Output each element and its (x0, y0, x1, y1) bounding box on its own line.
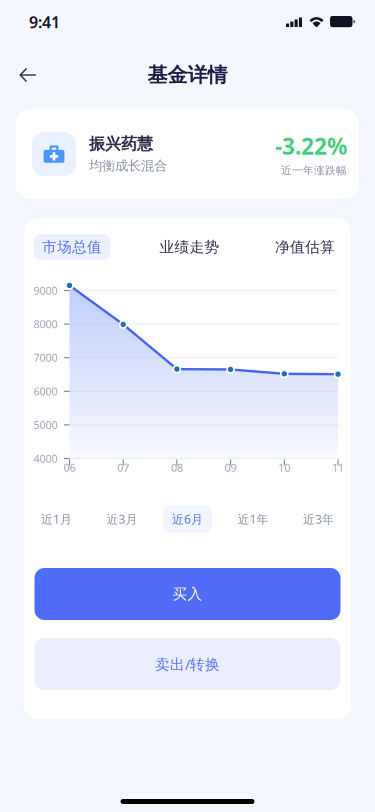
button[interactable]: 净值估算 (269, 234, 341, 260)
staticText: 买入 (172, 585, 202, 603)
staticText: 6000 (33, 384, 57, 398)
staticText: 07 (117, 460, 129, 475)
button[interactable]: 市场总值 (34, 234, 110, 260)
staticText: 净值估算 (275, 238, 335, 256)
staticText: 06 (63, 460, 75, 475)
staticText: 近1年 (237, 511, 268, 527)
staticText: 8000 (33, 317, 57, 331)
staticText: 近6月 (172, 511, 203, 527)
staticText: 均衡成长混合 (89, 158, 167, 174)
staticText: 近1月 (41, 511, 72, 527)
staticText: 9:41 (29, 11, 60, 33)
staticText: 近3月 (106, 511, 137, 527)
staticText: 近一年涨跌幅 (281, 164, 347, 177)
button[interactable]: 近3年 (294, 505, 343, 533)
staticText: 业绩走势 (159, 238, 219, 256)
button[interactable]: 近6月 (163, 505, 212, 533)
staticText: 市场总值 (42, 238, 102, 256)
button[interactable]: Back (8, 55, 48, 95)
button[interactable]: 卖出/转换 (34, 638, 340, 690)
staticText: 10 (278, 460, 290, 475)
button[interactable]: 近1年 (228, 505, 277, 533)
staticText: 基金详情 (147, 63, 227, 87)
staticText: 09 (225, 460, 237, 475)
staticText: 9000 (33, 283, 57, 298)
staticText: 近3年 (303, 511, 334, 527)
staticText: 08 (171, 460, 183, 475)
button[interactable]: 业绩走势 (153, 234, 225, 260)
staticText: 振兴药慧 (89, 134, 153, 154)
staticText: -3.22% (275, 131, 347, 161)
button[interactable]: 买入 (34, 568, 340, 620)
staticText: 4000 (33, 451, 57, 466)
staticText: 11 (332, 460, 344, 475)
button[interactable]: 近1月 (32, 505, 81, 533)
staticText: 5000 (33, 418, 57, 432)
button[interactable]: 近3月 (97, 505, 146, 533)
staticText: 卖出/转换 (155, 654, 220, 674)
staticText: 7000 (33, 351, 57, 365)
